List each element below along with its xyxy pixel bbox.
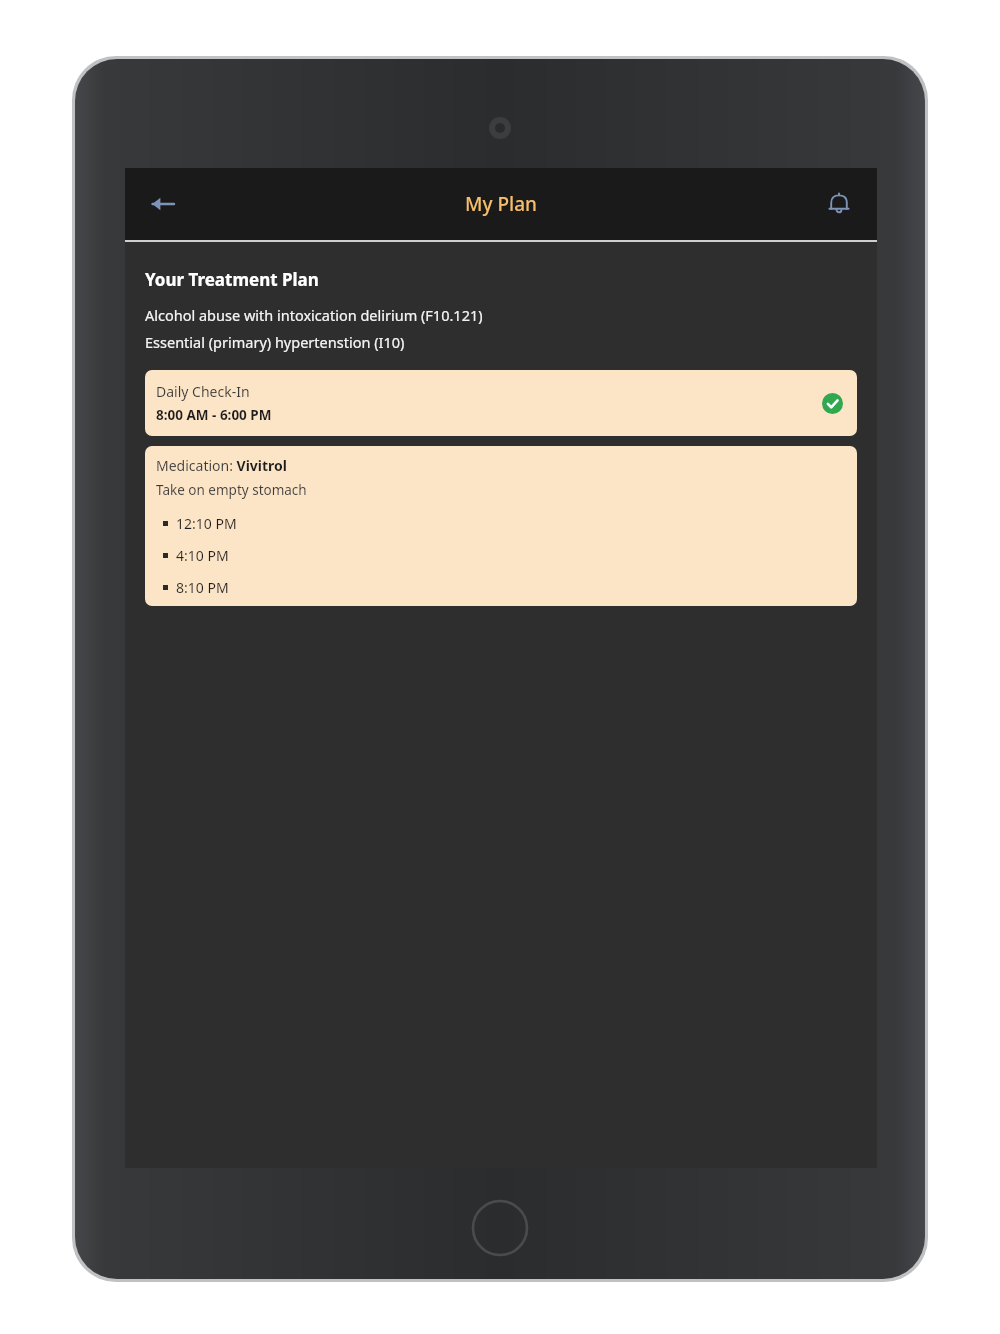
staticText: My Plan	[465, 191, 537, 217]
staticText: Essential (primary) hypertenstion (I10)	[145, 332, 405, 352]
button[interactable]: Daily Check-In	[145, 370, 857, 436]
button[interactable]: Medication: Vivitrol	[145, 446, 857, 606]
staticText: Medication: Vivitrol	[156, 456, 288, 475]
staticText: Your Treatment Plan	[145, 268, 319, 291]
staticText: Take on empty stomach	[156, 481, 307, 499]
button[interactable]: Back	[139, 180, 187, 228]
staticText: 4:10 PM	[176, 546, 229, 565]
staticText: Daily Check-In	[156, 382, 250, 401]
staticText: Alcohol abuse with intoxication delirium…	[145, 305, 483, 325]
staticText: 12:10 PM	[176, 514, 237, 533]
staticText: 8:00 AM - 6:00 PM	[156, 406, 272, 424]
button[interactable]: Notifications	[815, 180, 863, 228]
staticText: 8:10 PM	[176, 578, 229, 597]
